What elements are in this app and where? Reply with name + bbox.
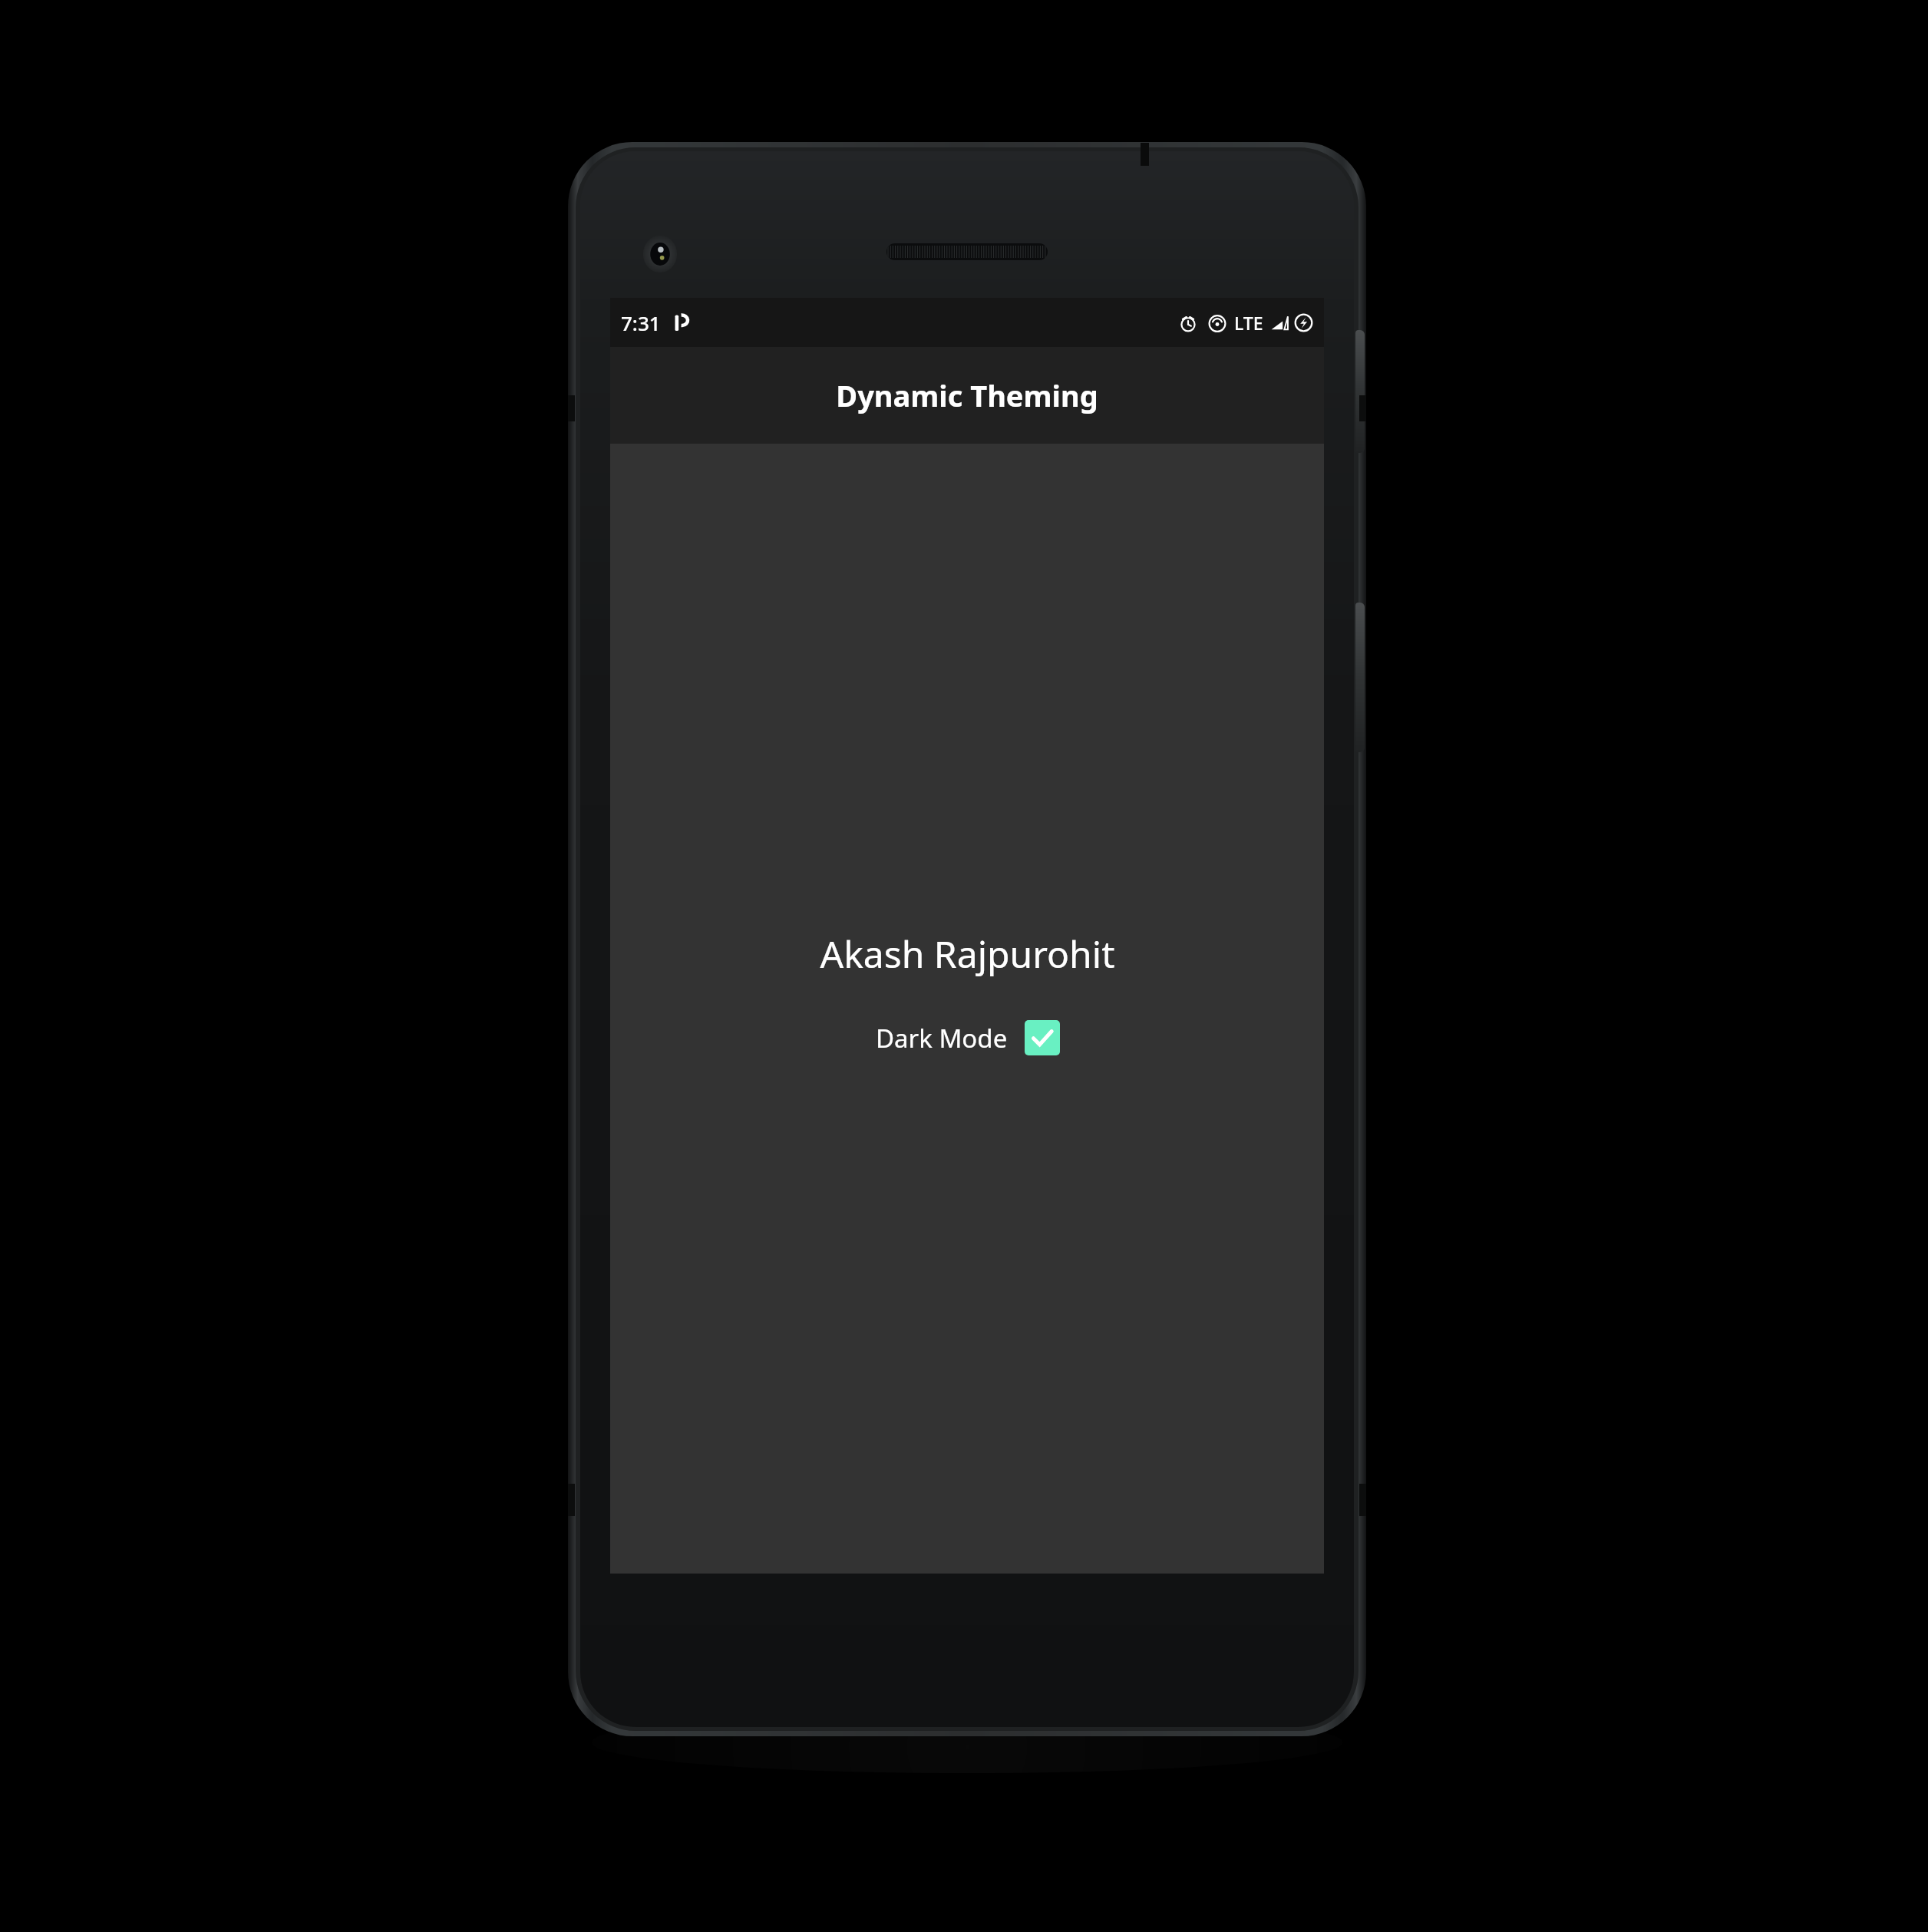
button[interactable]: Dark Mode bbox=[870, 1017, 1066, 1058]
staticText: LTE bbox=[1234, 311, 1263, 335]
staticText: Dark Mode bbox=[876, 1021, 1008, 1055]
staticText: Akash Rajpurohit bbox=[820, 929, 1115, 979]
staticText: 7:31 bbox=[621, 309, 661, 336]
other: Power button bbox=[1355, 330, 1365, 453]
staticText: Dynamic Theming bbox=[836, 375, 1098, 415]
other: Volume buttons bbox=[1355, 603, 1365, 752]
button[interactable]: Dark Mode checkbox, checked bbox=[1025, 1020, 1060, 1055]
